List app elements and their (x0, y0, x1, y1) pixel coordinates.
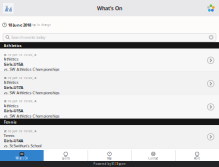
staticText: Girls-U17A (3, 85, 23, 90)
staticText: 18 June 2018 (8, 22, 31, 27)
staticText: Powered by (93, 162, 111, 166)
staticText: Sat 16 Jun 10 10:00, A (3, 99, 36, 103)
staticText: vs. St Swithun's School (3, 143, 41, 148)
staticText: Athletics (3, 43, 21, 48)
staticText: Athletics (3, 56, 18, 62)
staticText: vs. SW Athletics Championships (3, 90, 59, 95)
staticText: Search events today (11, 35, 45, 40)
button[interactable]: What's On (0, 150, 44, 161)
staticText: Tennis (3, 119, 16, 124)
button[interactable]: Sat 16 Jun 10 10:00, A (0, 95, 219, 119)
staticText: vs. SW Athletics Championships (3, 113, 59, 119)
button[interactable]: Sat 16 Jun 10 10:00, A (0, 72, 219, 95)
button[interactable]: Menu (207, 4, 215, 12)
button[interactable]: Powered by (0, 161, 219, 167)
button[interactable]: Sports (44, 150, 88, 161)
staticText: tap to change (32, 23, 51, 27)
staticText: Tennis (3, 133, 14, 138)
button[interactable]: Sat 16 Jun 10 10:00, A (0, 49, 219, 72)
staticText: Contact (148, 157, 158, 160)
button[interactable]: Map (88, 150, 131, 161)
staticText: Girls-U15A (3, 108, 23, 113)
staticText: Athletics (3, 103, 18, 108)
staticText: Sat 16 Jun 10 10:00, A (3, 53, 36, 56)
staticText: sport (117, 162, 125, 166)
staticText: vs. SW Athletics Championships (3, 67, 59, 72)
staticText: Sat 16 Jun 10 10:00, A (3, 76, 36, 80)
button[interactable]: Search events today (0, 33, 219, 42)
staticText: Athletics (3, 80, 18, 85)
button[interactable]: Contact (131, 150, 175, 161)
button[interactable]: 18 June 2018 (0, 16, 219, 33)
staticText: Sat 16 Jun 10 10:00, A (3, 129, 36, 133)
staticText: Map (107, 157, 112, 160)
staticText: Sports (62, 157, 70, 160)
button[interactable]: More (175, 150, 219, 161)
staticText: O (112, 162, 114, 166)
staticText: Girls-U15A (3, 61, 23, 67)
staticText: C (114, 162, 116, 166)
staticText: Girls-U14A (3, 138, 23, 143)
staticText: More (194, 157, 201, 160)
staticText: What's On (97, 5, 122, 12)
staticText: S (116, 162, 117, 166)
staticText: What's On (15, 157, 28, 160)
button[interactable]: Sat 16 Jun 10 10:00, A (0, 125, 219, 148)
button[interactable]: School logo (3, 3, 13, 13)
